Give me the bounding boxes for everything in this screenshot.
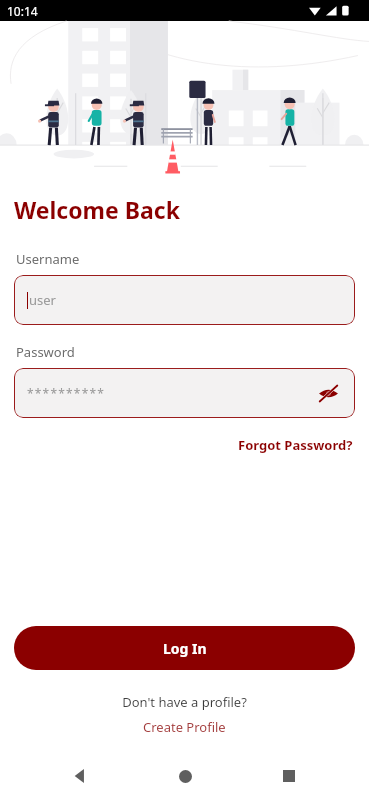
button[interactable]: Show password xyxy=(313,378,343,408)
staticText: Password xyxy=(16,343,75,361)
staticText: 10:14 xyxy=(7,3,38,19)
button[interactable]: Home xyxy=(161,752,209,800)
staticText: Forgot Password? xyxy=(238,436,353,454)
button[interactable]: Log In xyxy=(14,626,355,670)
staticText: ********** xyxy=(27,385,106,401)
staticText: Don't have a profile? xyxy=(0,693,369,711)
button[interactable]: Back xyxy=(56,752,104,800)
staticText: Create Profile xyxy=(143,718,226,736)
staticText: Username xyxy=(16,250,80,268)
button[interactable]: Create Profile xyxy=(137,716,232,738)
button[interactable]: Recent apps xyxy=(265,752,313,800)
button[interactable]: user xyxy=(14,275,355,325)
staticText: Log In xyxy=(163,639,207,658)
staticText: Welcome Back xyxy=(14,194,180,225)
staticText: user xyxy=(29,291,56,309)
button[interactable]: ********** xyxy=(14,368,355,418)
button[interactable]: Forgot Password? xyxy=(238,434,369,456)
